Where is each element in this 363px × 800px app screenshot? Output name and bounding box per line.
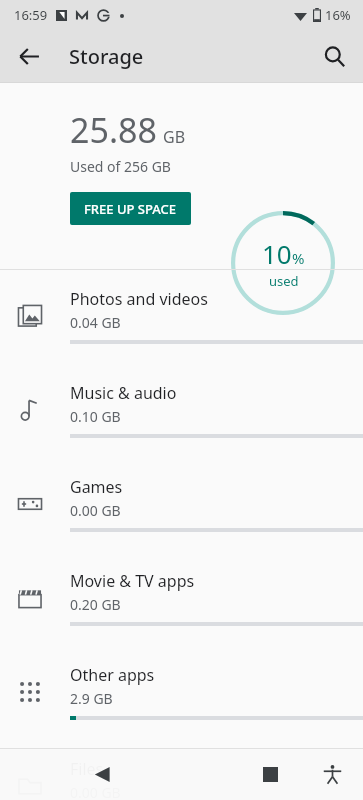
staticText: Files bbox=[70, 758, 104, 780]
staticText: 0.04 GB bbox=[70, 313, 121, 332]
button[interactable]: Games bbox=[0, 458, 363, 552]
staticText: GB bbox=[163, 126, 186, 148]
button[interactable]: Search bbox=[313, 35, 355, 77]
button[interactable]: Other apps bbox=[0, 646, 363, 740]
staticText: % bbox=[292, 248, 305, 268]
button[interactable]: Accessibility bbox=[312, 754, 352, 794]
button[interactable]: Back bbox=[8, 35, 50, 77]
staticText: Games bbox=[70, 476, 123, 498]
staticText: Used of 256 GB bbox=[70, 157, 171, 176]
staticText: 2.9 GB bbox=[70, 689, 113, 708]
staticText: Photos and videos bbox=[70, 288, 208, 310]
staticText: Music & audio bbox=[70, 382, 177, 404]
staticText: used bbox=[269, 272, 299, 290]
staticText: 16:59 bbox=[14, 6, 48, 24]
staticText: Movie & TV apps bbox=[70, 570, 195, 592]
staticText: 25.88 bbox=[70, 107, 157, 153]
staticText: FREE UP SPACE bbox=[84, 200, 177, 218]
button[interactable]: FREE UP SPACE bbox=[70, 192, 191, 225]
staticText: 0.00 GB bbox=[70, 501, 121, 520]
button[interactable]: Music & audio bbox=[0, 364, 363, 458]
button[interactable]: Back bbox=[80, 752, 124, 796]
button[interactable]: Files bbox=[0, 740, 363, 800]
button[interactable]: Photos and videos bbox=[0, 270, 363, 364]
staticText: Other apps bbox=[70, 664, 155, 686]
staticText: 0.10 GB bbox=[70, 407, 121, 426]
staticText: Storage bbox=[69, 43, 144, 70]
button[interactable]: Movie & TV apps bbox=[0, 552, 363, 646]
button[interactable]: Recents bbox=[248, 752, 292, 796]
staticText: 10 bbox=[262, 236, 292, 271]
staticText: 0.20 GB bbox=[70, 595, 121, 614]
staticText: 16% bbox=[325, 6, 351, 24]
